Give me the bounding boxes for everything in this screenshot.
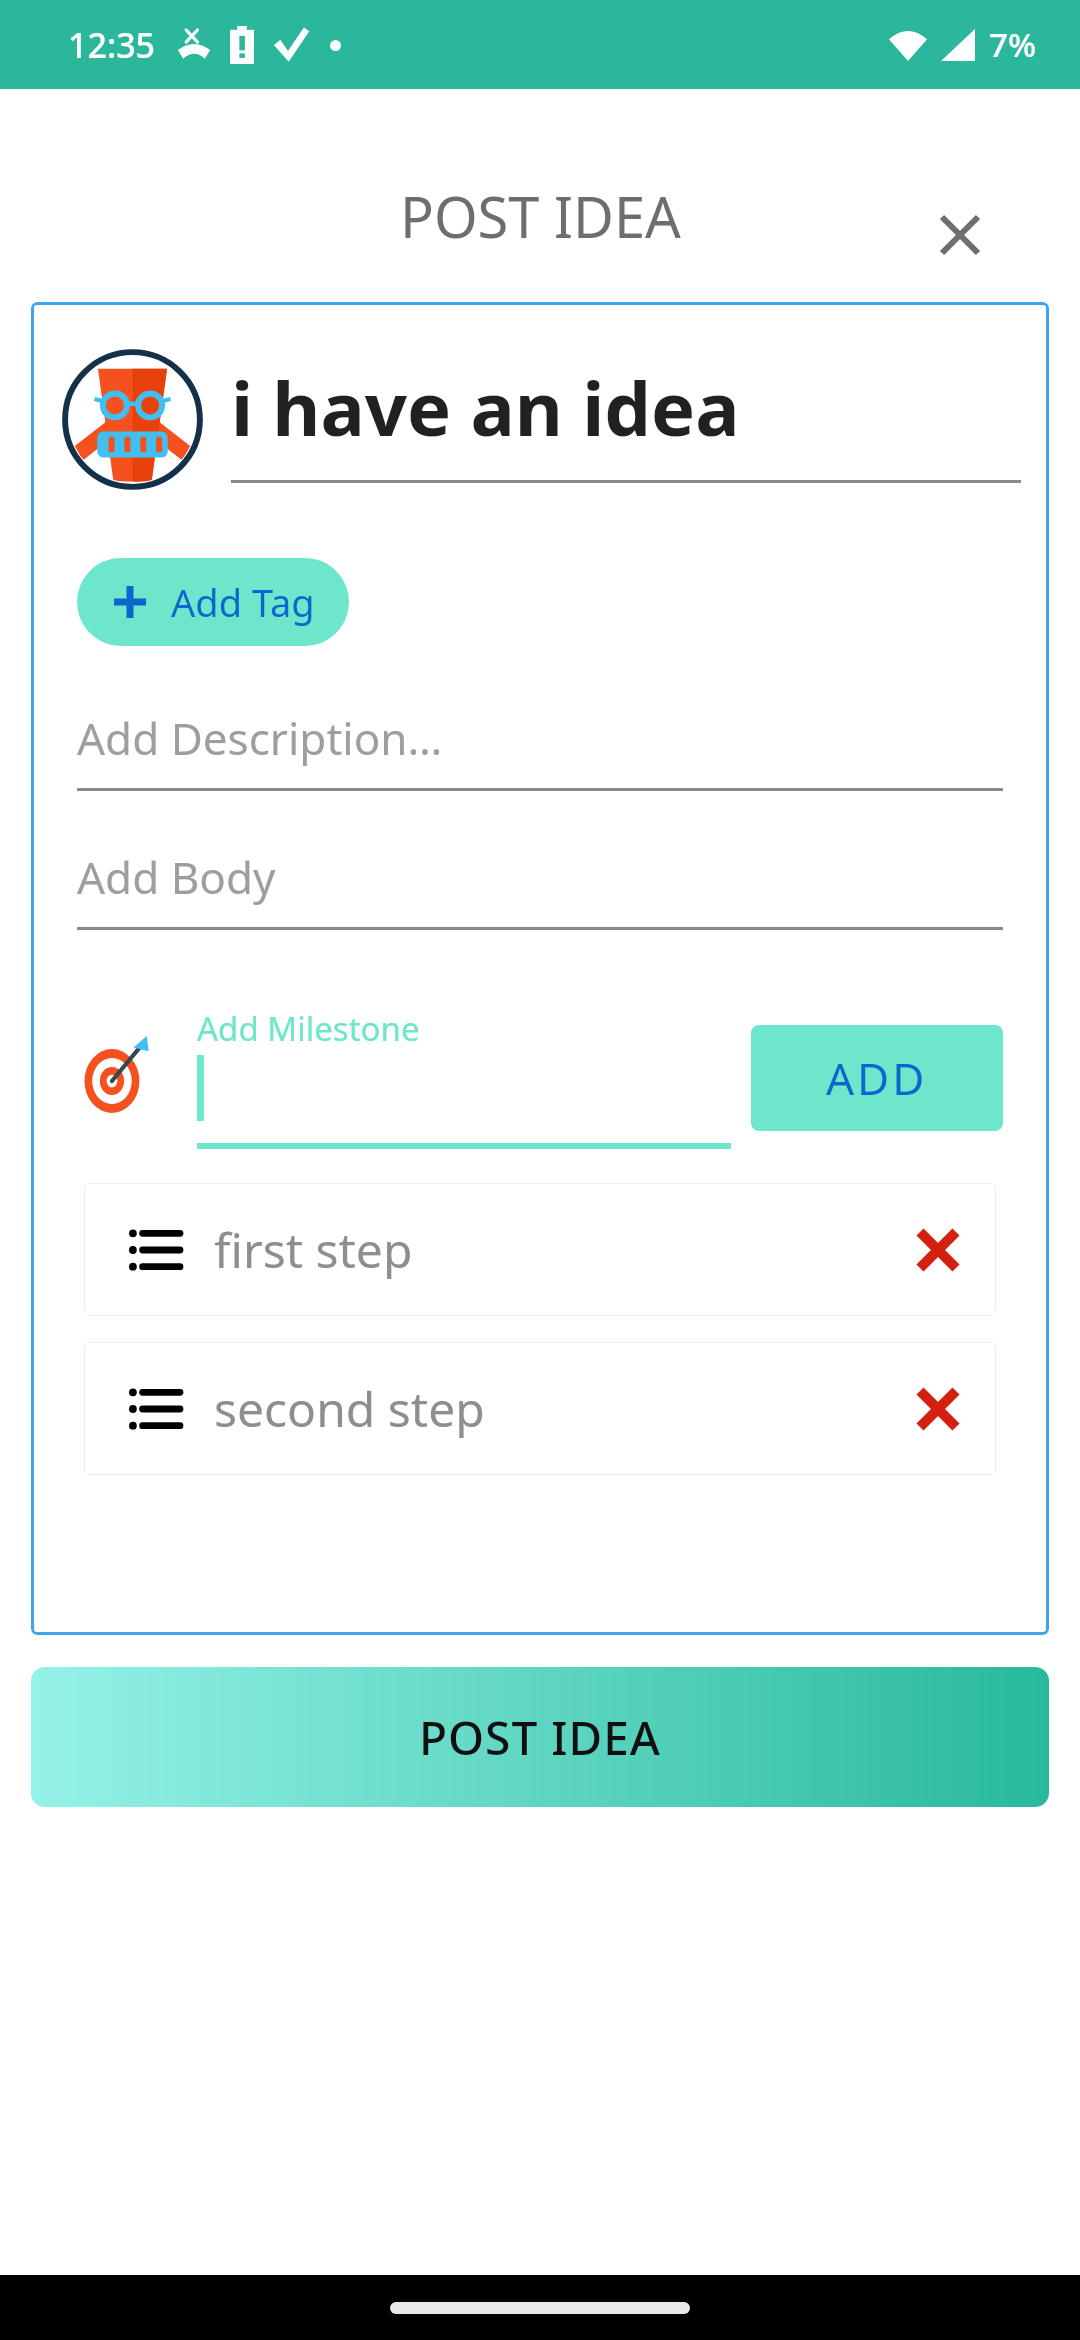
staticText: Add Milestone (197, 1006, 420, 1051)
button[interactable]: POST IDEA (31, 1667, 1049, 1807)
staticText: Add Tag (171, 576, 315, 628)
staticText: first step (214, 1217, 898, 1282)
button[interactable]: ADD (751, 1025, 1003, 1131)
staticText: POST IDEA (419, 1706, 661, 1769)
button[interactable]: Remove milestone (898, 1210, 978, 1290)
button[interactable]: Add Tag (77, 558, 349, 646)
button[interactable]: Remove milestone (898, 1369, 978, 1449)
staticText: Add Description… (77, 708, 443, 768)
staticText: second step (214, 1376, 898, 1441)
staticText: 12:35 (68, 22, 156, 68)
button[interactable]: Add Milestone (197, 1006, 731, 1149)
button[interactable]: second step (84, 1342, 996, 1475)
staticText: ADD (826, 1048, 928, 1108)
button[interactable]: Add Body (77, 847, 1003, 930)
button[interactable]: Add Description… (77, 708, 1003, 791)
button[interactable]: first step (84, 1183, 996, 1316)
staticText: i have an idea (231, 357, 740, 458)
button[interactable]: Close (932, 207, 988, 263)
staticText: POST IDEA (400, 178, 681, 254)
staticText: 7% (989, 22, 1036, 67)
staticText: Add Body (77, 847, 276, 907)
